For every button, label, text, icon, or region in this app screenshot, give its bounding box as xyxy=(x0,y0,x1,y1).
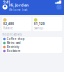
staticText: 9:41 xyxy=(3,0,10,5)
staticText: $2,480 xyxy=(3,22,14,26)
button[interactable]: Bookstore xyxy=(2,49,62,53)
staticText: $1,120 xyxy=(34,22,45,26)
staticText: Coffee shop xyxy=(7,37,25,41)
staticText: Hi, Jordan xyxy=(9,2,29,8)
button[interactable]: Electricity xyxy=(2,45,62,49)
button[interactable]: Coffee shop xyxy=(2,37,62,41)
button[interactable]: $1,120 xyxy=(33,17,62,31)
staticText: Balance xyxy=(3,26,13,30)
staticText: Welcome back xyxy=(9,8,27,12)
button[interactable]: $2,480 xyxy=(2,17,31,31)
staticText: Bookstore xyxy=(7,49,21,53)
button[interactable]: Notifications xyxy=(56,4,61,9)
staticText: ▃▅█ xyxy=(55,0,61,3)
staticText: Savings xyxy=(34,26,43,30)
staticText: Metro card xyxy=(7,41,21,45)
button[interactable]: Metro card xyxy=(2,41,62,45)
staticText: Electricity xyxy=(7,45,19,49)
staticText: Recent activity xyxy=(2,33,21,36)
